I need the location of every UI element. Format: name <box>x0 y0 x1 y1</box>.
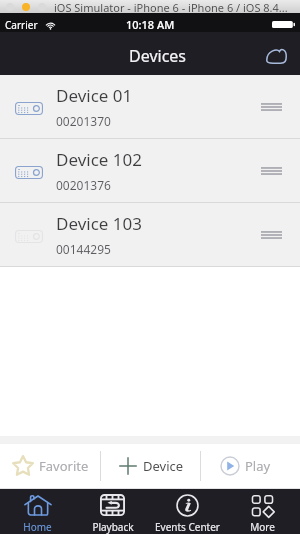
staticText: Device 01 <box>56 84 133 107</box>
staticText: Device 103 <box>56 212 143 235</box>
staticText: 00144295 <box>56 241 111 257</box>
staticText: Carrier <box>5 18 38 32</box>
staticText: Device <box>143 457 184 475</box>
button[interactable]: Device 103 <box>0 203 300 267</box>
staticText: Events Center <box>155 520 220 534</box>
button[interactable]: Play <box>196 444 295 488</box>
staticText: Favorite <box>39 457 89 475</box>
staticText: More <box>250 520 275 534</box>
staticText: 10:18 AM <box>126 17 175 32</box>
staticText: Playback <box>92 520 134 534</box>
staticText: 00201376 <box>56 177 111 193</box>
staticText: 00201370 <box>56 113 111 129</box>
staticText: iOS Simulator - iPhone 6 - iPhone 6 / iO… <box>54 0 288 13</box>
staticText: Device 102 <box>56 148 143 171</box>
staticText: Play <box>245 457 271 475</box>
staticText: Devices <box>129 45 187 67</box>
button[interactable]: Cloud <box>258 41 294 71</box>
staticText: Home <box>23 520 52 534</box>
button[interactable]: Device 102 <box>0 139 300 203</box>
button[interactable]: Favorite <box>0 444 100 488</box>
button[interactable]: Home <box>0 489 75 534</box>
button[interactable]: Playback <box>75 489 150 534</box>
button[interactable]: Device <box>101 444 200 488</box>
button[interactable]: Events Center <box>150 489 225 534</box>
button[interactable]: Device 01 <box>0 75 300 139</box>
button[interactable]: More <box>225 489 300 534</box>
